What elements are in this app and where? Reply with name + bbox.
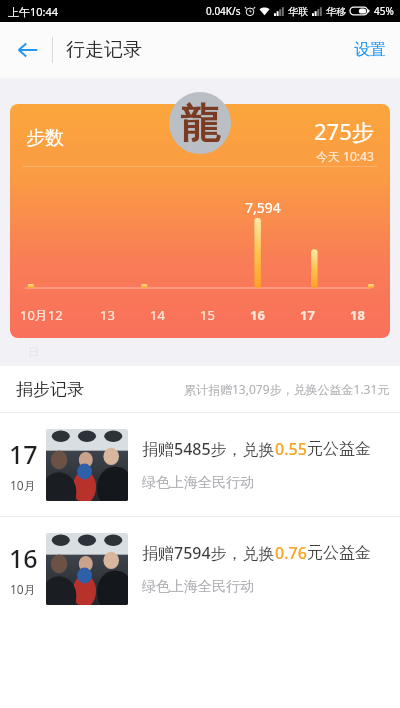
staticText: 17 [9, 437, 38, 471]
staticText: 累计捐赠13,079步，兑换公益金1.31元 [184, 381, 390, 397]
staticText: 绿色上海全民行动 [142, 474, 254, 492]
staticText: 今天 10:43 [316, 148, 374, 164]
staticText: 华移 [326, 5, 346, 18]
staticText: 华联 [288, 5, 308, 18]
staticText: 0.76 [275, 542, 307, 564]
staticText: 17 [300, 306, 315, 324]
staticText: 13 [100, 306, 115, 324]
button[interactable]: 头像 [169, 92, 231, 154]
staticText: 设置 [354, 40, 386, 60]
staticText: 0.04K/s [206, 4, 241, 18]
button[interactable]: 返回 [6, 28, 50, 72]
staticText: 18 [350, 306, 365, 324]
staticText: 10月 [10, 477, 36, 493]
button[interactable]: 步数 [10, 104, 390, 338]
staticText: 15 [200, 306, 215, 324]
button[interactable]: 设置 [340, 30, 400, 70]
button[interactable]: 16 [0, 517, 400, 620]
staticText: 45% [374, 4, 394, 18]
staticText: 步数 [26, 126, 64, 150]
staticText: 7,594 [245, 198, 281, 217]
staticText: 捐赠5485步，兑换 [142, 438, 275, 460]
staticText: 龍 [180, 98, 220, 148]
staticText: 10月12 [20, 306, 63, 324]
staticText: 日 [28, 345, 39, 359]
staticText: 元公益金 [307, 439, 371, 459]
staticText: 绿色上海全民行动 [142, 578, 254, 596]
staticText: 10月 [10, 581, 36, 597]
staticText: 捐赠7594步，兑换 [142, 542, 275, 564]
staticText: 0.55 [275, 438, 307, 460]
staticText: 捐步记录 [16, 379, 84, 400]
staticText: 上午10:44 [8, 4, 59, 19]
staticText: 16 [9, 541, 38, 575]
staticText: 275步 [314, 116, 374, 146]
staticText: 行走记录 [66, 38, 142, 62]
staticText: 14 [150, 306, 165, 324]
staticText: 16 [250, 306, 265, 324]
button[interactable]: 17 [0, 413, 400, 516]
staticText: 元公益金 [307, 543, 371, 563]
